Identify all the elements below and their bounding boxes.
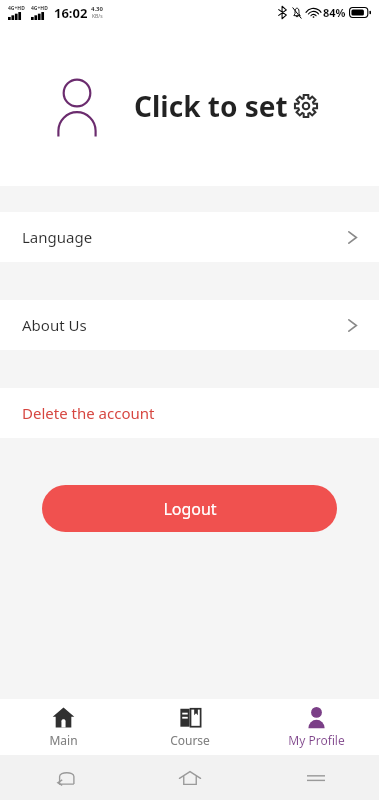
staticText: Click to set (134, 87, 288, 125)
staticText: My Profile (288, 732, 345, 748)
button[interactable]: Click to set (0, 25, 379, 186)
button[interactable]: Main (0, 699, 127, 755)
button[interactable]: My Profile (253, 699, 379, 755)
button[interactable]: Recent apps (253, 755, 379, 800)
other: Settings (294, 94, 318, 118)
staticText: Language (22, 227, 93, 247)
staticText: About Us (22, 315, 87, 335)
button[interactable]: About Us (0, 300, 379, 350)
button[interactable]: Course (127, 699, 253, 755)
button[interactable]: Logout (42, 485, 337, 532)
staticText: KB/s (92, 13, 103, 20)
staticText: Course (170, 732, 210, 748)
staticText: 84% (323, 5, 346, 20)
staticText: Main (49, 732, 78, 748)
staticText: Logout (163, 498, 217, 520)
staticText: Delete the account (22, 403, 155, 423)
button[interactable]: Language (0, 212, 379, 262)
staticText: 4G+HD (8, 5, 25, 12)
staticText: 16:02 (54, 4, 88, 22)
button[interactable]: Delete the account (0, 388, 379, 438)
staticText: 4G+HD (31, 5, 48, 12)
button[interactable]: Home (127, 755, 253, 800)
staticText: 4.30 (91, 5, 103, 13)
button[interactable]: Back (0, 755, 127, 800)
